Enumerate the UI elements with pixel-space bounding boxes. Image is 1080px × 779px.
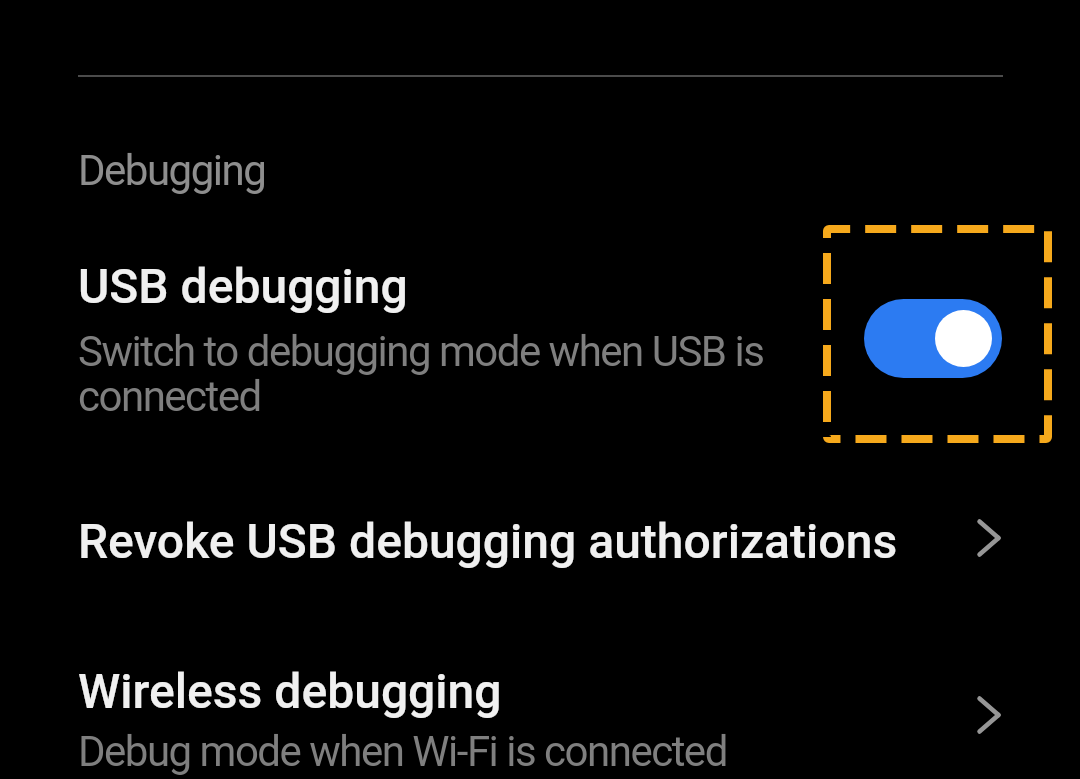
staticText: Debug mode when Wi-Fi is connected xyxy=(78,727,727,776)
staticText: Switch to debugging mode when USB is con… xyxy=(78,327,818,421)
staticText: Revoke USB debugging authorizations xyxy=(78,513,898,569)
button[interactable] xyxy=(864,299,1002,378)
staticText: Debugging xyxy=(78,146,266,195)
staticText: USB debugging xyxy=(78,258,408,314)
staticText: Wireless debugging xyxy=(78,663,502,719)
button[interactable]: USB debugging xyxy=(0,225,1080,443)
button[interactable]: Revoke USB debugging authorizations xyxy=(0,480,1080,600)
button[interactable]: Wireless debugging xyxy=(0,640,1080,779)
